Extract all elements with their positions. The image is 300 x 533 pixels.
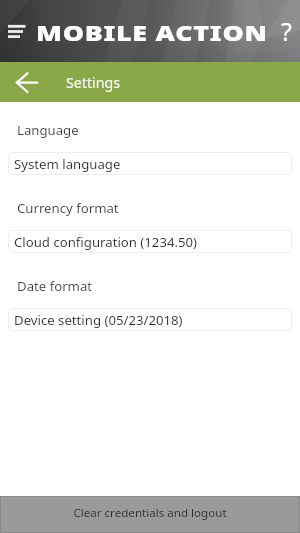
staticText: Currency format bbox=[17, 199, 119, 217]
button[interactable]: System language bbox=[8, 152, 292, 175]
button[interactable]: Language bbox=[0, 121, 300, 175]
staticText: Language bbox=[17, 121, 79, 139]
button[interactable]: Clear credentials and logout bbox=[0, 496, 300, 533]
button[interactable]: Help bbox=[272, 9, 300, 53]
button[interactable]: Currency format bbox=[0, 199, 300, 253]
button[interactable]: Date format bbox=[0, 277, 300, 331]
staticText: ? bbox=[281, 14, 292, 48]
staticText: Settings bbox=[66, 73, 120, 92]
staticText: Device setting (05/23/2018) bbox=[14, 311, 183, 329]
staticText: System language bbox=[14, 155, 121, 173]
button[interactable]: Device setting (05/23/2018) bbox=[8, 308, 292, 331]
button[interactable]: Cloud configuration (1234.50) bbox=[8, 230, 292, 253]
staticText: MOBILE ACTION bbox=[36, 18, 268, 47]
staticText: Clear credentials and logout bbox=[73, 505, 227, 521]
staticText: Cloud configuration (1234.50) bbox=[14, 233, 198, 251]
button[interactable]: Open navigation menu bbox=[0, 13, 36, 49]
button[interactable]: Navigate back bbox=[8, 62, 46, 102]
staticText: Date format bbox=[17, 277, 93, 295]
